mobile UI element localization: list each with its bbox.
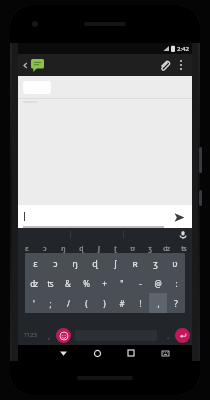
staticText: . [167,330,170,341]
button[interactable]: ! [131,293,149,313]
button[interactable]: ( [77,293,95,313]
button[interactable]: ? [167,293,185,313]
button[interactable]: & [59,273,77,293]
staticText: ʒ [153,257,158,269]
button[interactable]: Back [46,345,80,361]
button[interactable]: ʒ [145,253,165,273]
button[interactable]: ʋ [165,253,185,273]
staticText: ŋ [72,257,78,269]
button[interactable]: ɖ [72,241,90,256]
staticText: , [48,330,51,341]
staticText: ( [85,298,88,309]
button[interactable]: ʦ [42,273,59,293]
button[interactable]: ɔ [36,241,54,256]
button[interactable]: ŋ [65,253,85,273]
staticText: " [120,278,124,289]
button[interactable]: ʒ [141,241,158,256]
staticText: / [67,298,70,309]
staticText: ! [139,298,142,309]
button[interactable]: ʣ [25,273,42,293]
staticText: ʃ [98,244,100,254]
staticText: ʣ [163,244,170,254]
button[interactable]: Emoji [56,328,71,343]
button[interactable]: ʃ [90,241,107,256]
staticText: ' [33,298,35,309]
button[interactable]: - [131,273,149,293]
button[interactable]: ʀ [125,253,145,273]
button[interactable]: Voice input [177,229,189,241]
staticText: ʒ [148,244,152,254]
button[interactable]: ɛ [18,241,36,256]
staticText: ɛ [33,257,38,269]
button[interactable]: " [113,273,131,293]
staticText: ) [103,298,106,309]
staticText: ʦ [181,244,187,254]
staticText: 2:42 [177,45,189,53]
button[interactable]: + [95,273,113,293]
staticText: @ [154,278,162,289]
button[interactable]: ?123 [18,325,42,345]
button[interactable]: ) [95,293,113,313]
staticText: ɔ [43,244,47,254]
button[interactable]: Back [21,61,29,69]
button[interactable]: Change keyboard [148,345,182,361]
staticText: ʦ [47,278,54,289]
staticText: ʋ [172,257,178,269]
button[interactable]: ɛ [25,253,45,273]
button[interactable]: ɔ [45,253,65,273]
staticText: : [175,278,178,289]
button[interactable]: ʃ [105,253,125,273]
button[interactable]: Recent apps [114,345,148,361]
staticText: & [65,278,71,289]
staticText: ʣ [30,278,38,289]
staticText: ɖ [79,244,84,254]
button[interactable]: ɖ [85,253,105,273]
staticText: ʈ [114,244,117,254]
button[interactable]: ; [42,293,59,313]
staticText: ɖ [92,257,98,269]
staticText: + [102,278,107,289]
button[interactable]: % [77,273,95,293]
button[interactable]: @ [149,273,167,293]
button[interactable]: Enter [175,328,190,343]
button[interactable]: ʊ [124,241,141,256]
staticText: ? [174,298,178,309]
button[interactable]: ʦ [175,241,192,256]
button[interactable]: More options [173,57,189,73]
button[interactable]: ʣ [158,241,175,256]
staticText: ɛ [25,244,29,254]
button[interactable]: / [59,293,77,313]
button[interactable]: ' [25,293,42,313]
button[interactable]: Send [170,208,188,226]
staticText: ŋ [61,244,66,254]
button[interactable]: : [167,273,185,293]
button[interactable]: Home [80,345,114,361]
staticText: ɔ [53,257,58,269]
staticText: ʃ [114,257,117,269]
staticText: ʊ [130,244,135,254]
button[interactable]: , [42,325,56,345]
staticText: , [157,298,160,309]
button[interactable]: # [113,293,131,313]
staticText: # [119,298,125,309]
staticText: ʀ [132,257,138,269]
staticText: ; [49,298,52,309]
staticText: % [83,278,90,289]
button[interactable]: Attach [155,56,173,74]
staticText: - [139,278,142,289]
button[interactable]: ŋ [54,241,72,256]
button[interactable]: , [149,293,167,313]
button[interactable]: Contact [30,58,45,73]
button[interactable]: ʈ [107,241,124,256]
staticText: ?123 [24,331,37,339]
